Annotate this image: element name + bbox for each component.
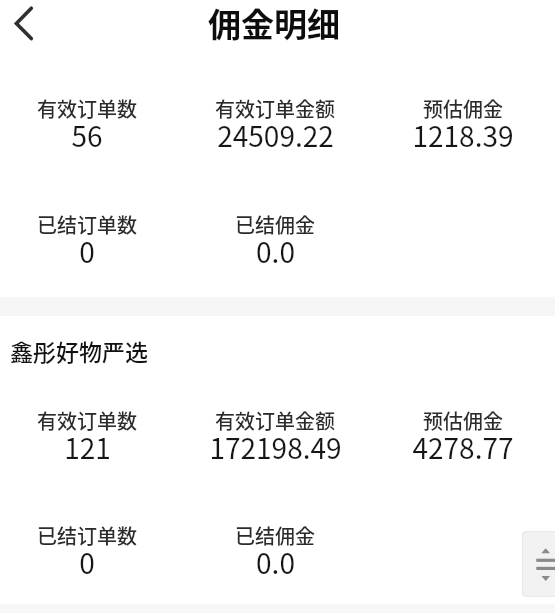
staticText: 有效订单数 bbox=[37, 406, 137, 435]
button[interactable]: Back bbox=[0, 0, 46, 48]
staticText: 已结佣金 bbox=[235, 521, 315, 550]
staticText: 预估佣金 bbox=[423, 94, 503, 123]
staticText: 已结佣金 bbox=[235, 210, 315, 239]
staticText: 已结订单数 bbox=[37, 521, 137, 550]
staticText: 0.0 bbox=[256, 542, 295, 583]
staticText: 鑫彤好物严选 bbox=[10, 334, 148, 367]
staticText: 预估佣金 bbox=[423, 406, 503, 435]
staticText: 0 bbox=[79, 231, 95, 272]
staticText: 有效订单金额 bbox=[215, 94, 335, 123]
staticText: 佣金明细 bbox=[208, 0, 340, 47]
button[interactable]: 鑫彤好物严选 bbox=[0, 326, 555, 370]
staticText: 172198.49 bbox=[209, 427, 342, 468]
staticText: 1218.39 bbox=[412, 115, 514, 156]
staticText: 56 bbox=[71, 115, 103, 156]
staticText: 0.0 bbox=[256, 231, 295, 272]
staticText: 24509.22 bbox=[217, 115, 334, 156]
staticText: 有效订单金额 bbox=[215, 406, 335, 435]
staticText: 121 bbox=[64, 427, 111, 468]
staticText: 0 bbox=[79, 542, 95, 583]
button[interactable]: Resize bbox=[522, 531, 555, 597]
staticText: 已结订单数 bbox=[37, 210, 137, 239]
staticText: 4278.77 bbox=[412, 427, 514, 468]
staticText: 有效订单数 bbox=[37, 94, 137, 123]
